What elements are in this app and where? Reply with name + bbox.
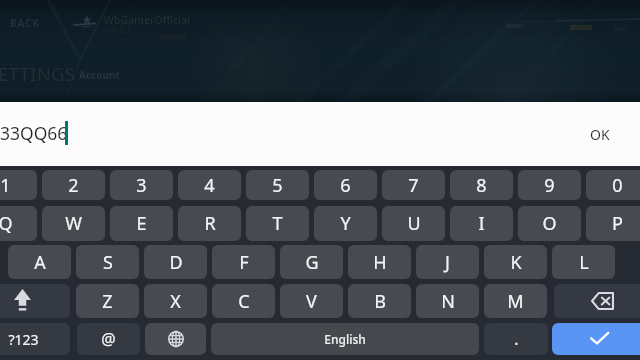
staticText: M [507,289,524,314]
button[interactable]: I [450,206,513,241]
button[interactable]: K [484,245,547,279]
button[interactable]: OK [578,120,622,148]
staticText: C [238,289,250,314]
staticText: OK [590,125,610,144]
staticText: 6 [340,173,351,198]
button[interactable]: J [416,245,479,279]
staticText: H [373,250,387,275]
staticText: N [441,289,455,314]
staticText: ETTINGS [0,62,76,87]
staticText: T [272,211,283,236]
button[interactable]: Z [76,284,139,318]
staticText: WB-EU [104,24,130,35]
staticText: 33QQ66 [0,121,68,145]
button[interactable]: D [144,245,207,279]
button[interactable]: H [348,245,411,279]
staticText: 9 [544,173,555,198]
staticText: Z [102,289,113,314]
button[interactable]: Enter [552,323,640,355]
staticText: V [306,289,317,314]
button[interactable]: U [382,206,445,241]
button[interactable]: O [518,206,581,241]
button[interactable]: 0 [586,170,640,200]
button[interactable]: W [42,206,105,241]
staticText: English [324,331,366,347]
staticText: . [514,328,519,350]
button[interactable]: ?123 [0,323,70,355]
button[interactable]: N [416,284,479,318]
staticText: U [407,211,421,236]
staticText: I [478,211,485,236]
button[interactable]: E [110,206,173,241]
button[interactable]: 9 [518,170,581,200]
button[interactable]: Y [314,206,377,241]
staticText: R [204,211,216,236]
staticText: 2 [68,173,79,198]
button[interactable]: S [76,245,139,279]
button[interactable]: Backspace [554,284,640,318]
button[interactable]: . [484,323,548,355]
button[interactable]: 3 [110,170,173,200]
staticText: 1 [0,173,11,198]
staticText: ?123 [8,330,39,349]
button[interactable]: Change keyboard language [145,323,206,355]
staticText: L [579,250,589,275]
staticText: WbGamerOfficial [104,13,190,27]
button[interactable]: F [212,245,275,279]
button[interactable]: Q [0,206,37,241]
staticText: @ [101,328,116,350]
button[interactable]: A [8,245,71,279]
button[interactable]: M [484,284,547,318]
button[interactable]: B [348,284,411,318]
button[interactable]: C [212,284,275,318]
button[interactable]: @ [77,323,140,355]
button[interactable]: P [586,206,640,241]
staticText: 8 [476,173,487,198]
button[interactable]: 4 [178,170,241,200]
staticText: P [612,211,623,236]
button[interactable]: 5 [246,170,309,200]
staticText: 5 [272,173,283,198]
staticText: W [65,211,82,236]
staticText: X [170,289,181,314]
button[interactable]: 1 [0,170,37,200]
staticText: 0 [612,173,623,198]
staticText: J [445,250,450,275]
button[interactable]: Shift [0,284,70,318]
staticText: 4 [204,173,215,198]
button[interactable]: R [178,206,241,241]
button[interactable]: 6 [314,170,377,200]
staticText: A [34,250,46,275]
staticText: E [136,211,147,236]
button[interactable]: 2 [42,170,105,200]
button[interactable]: L [552,245,615,279]
button[interactable]: T [246,206,309,241]
button[interactable]: X [144,284,207,318]
staticText: Y [340,211,351,236]
staticText: K [510,250,522,275]
staticText: Q [0,211,13,236]
button[interactable]: 8 [450,170,513,200]
button[interactable]: English [211,323,479,355]
button[interactable]: Back [0,15,44,31]
staticText: G [305,250,319,275]
button[interactable]: V [280,284,343,318]
button[interactable]: G [280,245,343,279]
button[interactable]: 7 [382,170,445,200]
staticText: D [169,250,183,275]
staticText: 3 [136,173,147,198]
staticText: F [239,250,249,275]
staticText: 7 [408,173,419,198]
staticText: BACK [10,16,40,30]
staticText: S [103,250,113,275]
staticText: B [374,289,386,314]
staticText: Account [79,68,120,82]
staticText: O [542,211,557,236]
